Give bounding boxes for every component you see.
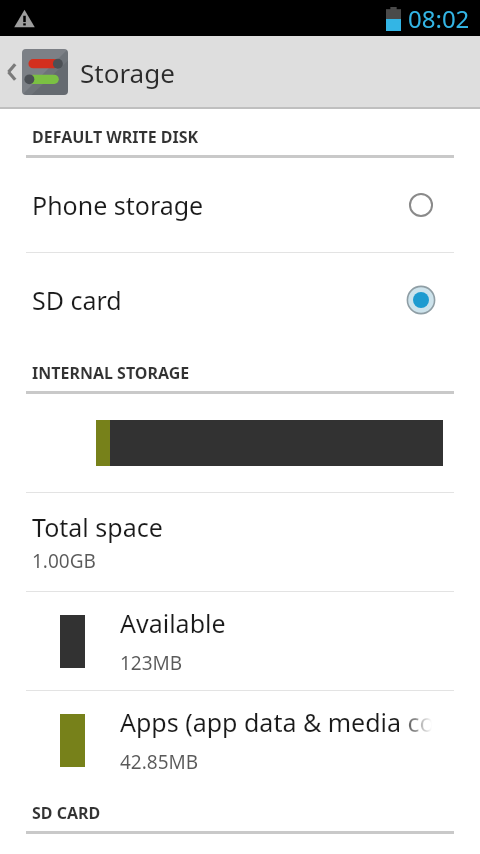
staticText: Phone storage [32,188,404,222]
button[interactable]: Available [0,592,480,690]
staticText: 42.85MB [120,749,199,775]
staticText: SD CARD [32,802,101,824]
staticText: Available [120,606,226,640]
staticText: 123MB [120,650,183,676]
button[interactable]: Total space [0,493,480,591]
staticText: INTERNAL STORAGE [32,362,190,384]
staticText: DEFAULT WRITE DISK [32,126,199,148]
staticText: Storage [80,55,175,90]
staticText: Total space [32,510,163,544]
button[interactable]: Apps (app data & media content) [0,691,480,789]
staticText: 1.00GB [32,548,96,574]
staticText: SD card [32,283,404,317]
staticText: 08:02 [408,2,470,35]
button[interactable]: Navigate up, Storage [0,36,480,107]
button[interactable]: SD card [0,253,480,347]
staticText: Apps (app data & media content) [120,705,432,739]
button[interactable]: Phone storage [0,158,480,252]
